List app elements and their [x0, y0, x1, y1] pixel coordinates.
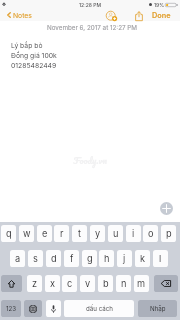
- button[interactable]: n: [116, 275, 131, 292]
- staticText: y: [95, 228, 101, 239]
- staticText: f: [70, 253, 74, 264]
- staticText: l: [159, 253, 162, 264]
- staticText: z: [32, 278, 38, 289]
- staticText: b: [103, 278, 109, 289]
- staticText: p: [166, 228, 172, 239]
- button[interactable]: Add attachment: [160, 202, 173, 215]
- staticText: h: [104, 253, 110, 264]
- button[interactable]: y: [90, 225, 105, 242]
- button[interactable]: Shift: [1, 275, 22, 292]
- button[interactable]: g: [82, 250, 97, 267]
- button[interactable]: b: [98, 275, 113, 292]
- staticText: November 6, 2017 at 12:27 PM: [2, 24, 180, 32]
- staticText: j: [123, 253, 126, 264]
- staticText: r: [60, 228, 64, 239]
- staticText: dấu cách: [86, 305, 113, 313]
- staticText: Done: [152, 11, 171, 20]
- button[interactable]: Done: [148, 10, 174, 21]
- button[interactable]: Nhập: [138, 300, 177, 317]
- staticText: t: [78, 228, 82, 239]
- staticText: i: [132, 228, 135, 239]
- staticText: n: [121, 278, 127, 289]
- staticText: k: [140, 253, 146, 264]
- staticText: o: [148, 228, 154, 239]
- staticText: 12:28 PM: [79, 2, 102, 8]
- button[interactable]: dấu cách: [64, 300, 134, 317]
- button[interactable]: Add People: [103, 10, 119, 21]
- button[interactable]: f: [64, 250, 79, 267]
- button[interactable]: i: [126, 225, 141, 242]
- button[interactable]: q: [1, 225, 16, 242]
- staticText: q: [6, 228, 12, 239]
- staticText: v: [85, 278, 91, 289]
- button[interactable]: u: [108, 225, 123, 242]
- staticText: 19%: [154, 2, 165, 8]
- button[interactable]: Dictation: [46, 300, 61, 317]
- button[interactable]: h: [99, 250, 114, 267]
- button[interactable]: m: [134, 275, 149, 292]
- staticText: e: [42, 228, 48, 239]
- button[interactable]: l: [153, 250, 168, 267]
- button[interactable]: Numbers: [1, 300, 21, 317]
- button[interactable]: a: [10, 250, 25, 267]
- staticText: 01285482449: [11, 61, 57, 69]
- staticText: Notes: [13, 11, 32, 19]
- staticText: w: [23, 228, 31, 239]
- button[interactable]: j: [117, 250, 132, 267]
- button[interactable]: p: [161, 225, 176, 242]
- staticText: d: [51, 253, 57, 264]
- button[interactable]: Share: [132, 10, 146, 21]
- staticText: s: [33, 253, 38, 264]
- button[interactable]: t: [72, 225, 87, 242]
- button[interactable]: w: [19, 225, 34, 242]
- button[interactable]: v: [80, 275, 95, 292]
- staticText: Nhập: [150, 305, 166, 313]
- button[interactable]: Switch keyboard: [24, 300, 42, 317]
- staticText: a: [15, 253, 21, 264]
- button[interactable]: Notes: [5, 10, 34, 21]
- button[interactable]: x: [45, 275, 60, 292]
- staticText: Đồng giá 100k: [11, 51, 57, 59]
- button[interactable]: o: [143, 225, 158, 242]
- staticText: m: [137, 278, 146, 289]
- button[interactable]: d: [46, 250, 61, 267]
- staticText: 123: [6, 305, 17, 313]
- button[interactable]: k: [135, 250, 150, 267]
- button[interactable]: c: [62, 275, 77, 292]
- button[interactable]: z: [27, 275, 42, 292]
- button[interactable]: s: [28, 250, 43, 267]
- button[interactable]: r: [54, 225, 69, 242]
- button[interactable]: Backspace: [154, 275, 178, 292]
- button[interactable]: e: [37, 225, 52, 242]
- staticText: Lý bắp bò: [11, 41, 43, 49]
- staticText: u: [113, 228, 119, 239]
- staticText: x: [50, 278, 56, 289]
- staticText: g: [87, 253, 93, 264]
- staticText: c: [67, 278, 73, 289]
